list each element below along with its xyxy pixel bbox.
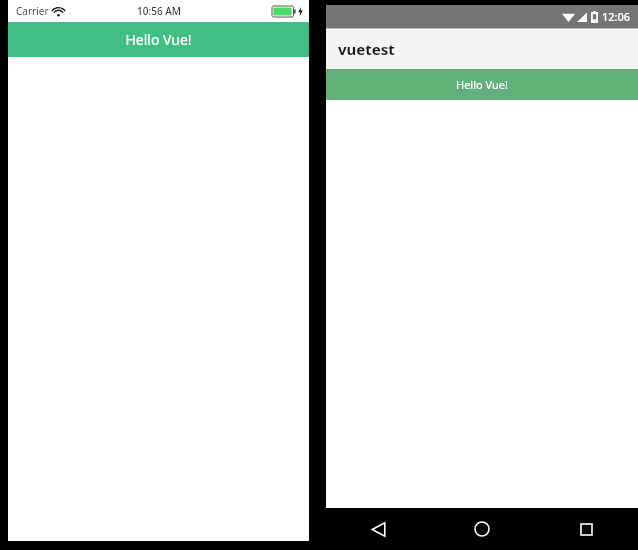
button[interactable]: Hello Vue! (326, 69, 638, 100)
button[interactable]: vuetest (326, 29, 638, 69)
staticText: Carrier (16, 4, 49, 18)
staticText: Hello Vue! (456, 77, 508, 92)
button[interactable]: Home (430, 508, 534, 550)
staticText: vuetest (338, 39, 395, 59)
staticText: 10:56 AM (137, 4, 181, 18)
button[interactable]: Hello Vue! (8, 22, 309, 57)
staticText: Hello Vue! (125, 30, 192, 49)
button[interactable]: Back (326, 508, 430, 550)
staticText: 12:06 (602, 9, 631, 24)
button[interactable]: Recent apps (534, 508, 638, 550)
